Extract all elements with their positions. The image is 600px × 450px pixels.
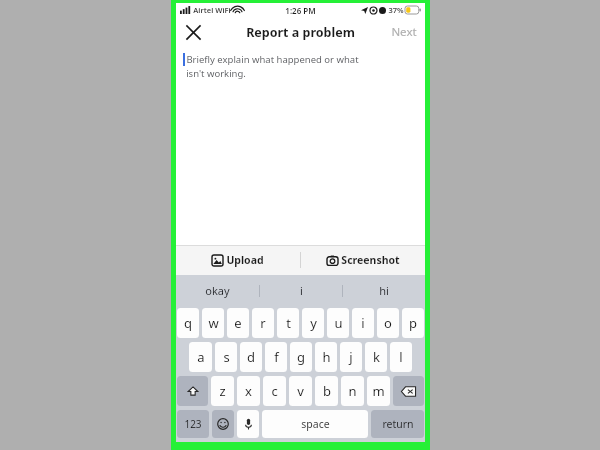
staticText: b: [323, 382, 331, 400]
button[interactable]: Backspace: [393, 376, 424, 406]
button[interactable]: e: [227, 308, 249, 338]
staticText: x: [245, 382, 252, 400]
button[interactable]: n: [341, 376, 364, 406]
staticText: i: [300, 283, 303, 298]
staticText: c: [271, 382, 278, 400]
staticText: v: [297, 382, 304, 400]
staticText: okay: [205, 283, 230, 298]
button[interactable]: Screenshot: [301, 245, 425, 275]
staticText: 1:26 PM: [285, 5, 316, 16]
staticText: n: [348, 382, 357, 400]
button[interactable]: okay: [176, 275, 259, 306]
button[interactable]: v: [289, 376, 312, 406]
button[interactable]: i: [352, 308, 374, 338]
button[interactable]: f: [265, 342, 287, 372]
button[interactable]: p: [402, 308, 424, 338]
staticText: hi: [379, 283, 389, 298]
button[interactable]: k: [365, 342, 387, 372]
button[interactable]: u: [327, 308, 349, 338]
staticText: t: [286, 314, 291, 332]
button[interactable]: w: [202, 308, 224, 338]
button[interactable]: a: [189, 342, 212, 372]
staticText: l: [399, 348, 403, 366]
button[interactable]: hi: [343, 275, 425, 306]
button[interactable]: b: [315, 376, 338, 406]
staticText: Next: [391, 24, 417, 40]
staticText: h: [322, 348, 331, 366]
button[interactable]: return: [371, 410, 424, 438]
button[interactable]: l: [390, 342, 412, 372]
button[interactable]: i: [260, 275, 342, 306]
button[interactable]: d: [240, 342, 262, 372]
staticText: Airtel WiFi: [193, 5, 231, 15]
staticText: Upload: [226, 253, 264, 267]
button[interactable]: m: [367, 376, 390, 406]
staticText: Briefly explain what happened or what: [186, 53, 359, 66]
button[interactable]: q: [177, 308, 199, 338]
staticText: y: [310, 314, 317, 332]
staticText: isn't working.: [186, 67, 246, 80]
staticText: q: [184, 314, 192, 332]
staticText: z: [219, 382, 226, 400]
staticText: w: [208, 314, 219, 332]
button[interactable]: g: [290, 342, 312, 372]
button[interactable]: Upload: [176, 245, 300, 275]
button[interactable]: s: [215, 342, 237, 372]
button[interactable]: t: [277, 308, 299, 338]
button[interactable]: z: [211, 376, 234, 406]
staticText: 37%: [388, 5, 404, 15]
staticText: return: [382, 417, 414, 431]
staticText: Screenshot: [341, 253, 400, 267]
staticText: d: [247, 348, 255, 366]
staticText: s: [223, 348, 230, 366]
staticText: u: [334, 314, 343, 332]
staticText: a: [197, 348, 205, 366]
button[interactable]: Voice input: [237, 410, 259, 438]
button[interactable]: c: [263, 376, 286, 406]
staticText: o: [384, 314, 392, 332]
staticText: g: [297, 348, 305, 366]
staticText: space: [301, 417, 330, 431]
button[interactable]: y: [302, 308, 324, 338]
staticText: r: [260, 314, 266, 332]
button[interactable]: h: [315, 342, 337, 372]
button[interactable]: 123: [177, 410, 209, 438]
button[interactable]: Next: [389, 20, 419, 44]
staticText: i: [361, 314, 365, 332]
button[interactable]: space: [262, 410, 368, 438]
staticText: Report a problem: [246, 24, 355, 41]
staticText: e: [234, 314, 242, 332]
button[interactable]: Shift: [177, 376, 208, 406]
button[interactable]: x: [237, 376, 260, 406]
staticText: j: [349, 348, 353, 366]
staticText: f: [274, 348, 279, 366]
button[interactable]: o: [377, 308, 399, 338]
staticText: 123: [184, 417, 202, 431]
button[interactable]: j: [340, 342, 362, 372]
button[interactable]: Close: [180, 19, 206, 45]
staticText: k: [373, 348, 380, 366]
button[interactable]: r: [252, 308, 274, 338]
button[interactable]: Emoji: [212, 410, 234, 438]
staticText: p: [409, 314, 417, 332]
staticText: m: [372, 382, 385, 400]
